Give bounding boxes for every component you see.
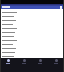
button[interactable] [0, 54, 64, 58]
button[interactable]: More options [59, 5, 63, 9]
button[interactable] [0, 18, 64, 22]
button[interactable] [0, 34, 64, 38]
button[interactable] [0, 38, 64, 42]
button[interactable] [0, 10, 64, 14]
button[interactable]: Tab 3 [32, 58, 48, 72]
button[interactable] [0, 14, 64, 18]
button[interactable] [0, 46, 64, 50]
button[interactable] [0, 22, 64, 26]
button[interactable] [0, 30, 64, 34]
button[interactable] [0, 50, 64, 54]
button[interactable]: Tab 4 [48, 58, 64, 72]
button[interactable] [0, 26, 64, 30]
button[interactable]: Tab 2 [16, 58, 32, 72]
button[interactable]: Tab 1 [0, 58, 16, 72]
button[interactable] [0, 42, 64, 46]
